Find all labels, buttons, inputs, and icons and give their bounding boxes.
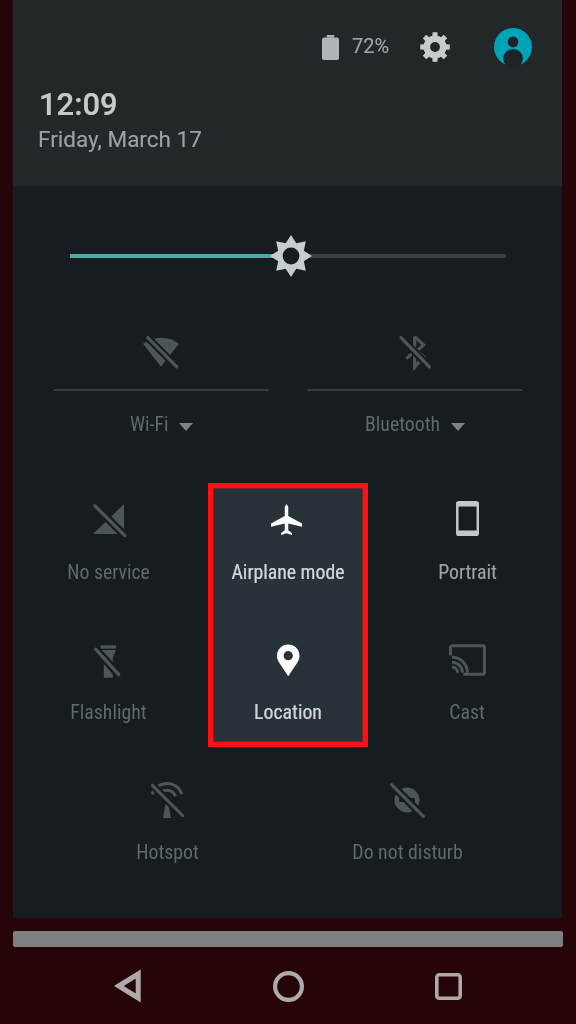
button[interactable]: User profile xyxy=(491,25,535,69)
button[interactable]: Bluetooth xyxy=(288,320,542,444)
button[interactable]: Cast xyxy=(382,624,552,734)
staticText: Cast xyxy=(449,701,485,724)
button[interactable]: Airplane mode xyxy=(203,484,373,594)
button[interactable]: Brightness xyxy=(57,235,522,277)
button[interactable]: Recent apps xyxy=(416,954,480,1018)
button[interactable]: Settings xyxy=(413,25,457,69)
staticText: 12:09 xyxy=(39,86,118,122)
staticText: No service xyxy=(67,561,150,584)
staticText: 72% xyxy=(352,34,390,57)
staticText: Location xyxy=(254,701,322,724)
staticText: Do not disturb xyxy=(352,841,463,864)
button[interactable]: Location xyxy=(203,624,373,734)
button[interactable]: No service xyxy=(23,484,193,594)
button[interactable]: Flashlight xyxy=(23,624,193,734)
staticText: Wi-Fi xyxy=(130,413,169,436)
button[interactable]: Hotspot xyxy=(82,764,252,874)
staticText: Hotspot xyxy=(136,841,199,864)
staticText: Bluetooth xyxy=(365,413,441,436)
button[interactable]: Back xyxy=(96,954,160,1018)
button[interactable]: Home xyxy=(256,954,320,1018)
staticText: Portrait xyxy=(438,561,497,584)
button[interactable]: Do not disturb xyxy=(322,764,492,874)
button[interactable]: Wi-Fi xyxy=(34,320,288,444)
button[interactable]: Portrait xyxy=(382,484,552,594)
staticText: Airplane mode xyxy=(231,561,345,584)
staticText: Friday, March 17 xyxy=(38,126,202,152)
staticText: Flashlight xyxy=(70,701,147,724)
